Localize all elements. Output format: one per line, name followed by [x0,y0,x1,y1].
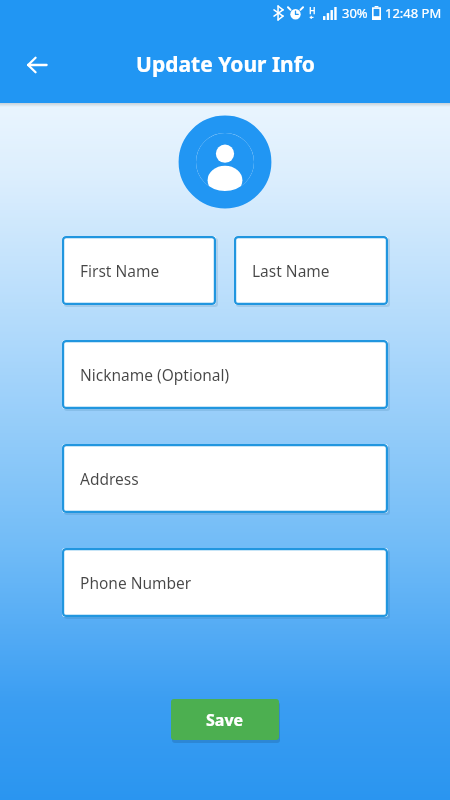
staticText: 30% [342,4,368,22]
button[interactable]: Nickname (Optional) [62,340,388,409]
staticText: Last Name [252,260,330,281]
staticText: Address [80,468,139,489]
staticText: 12:48 PM [385,4,442,22]
staticText: Save [206,709,244,731]
button[interactable]: Address [62,444,388,513]
button[interactable]: Back [13,41,61,89]
button[interactable]: Phone Number [62,548,388,617]
staticText: Nickname (Optional) [80,364,230,385]
button[interactable]: Save [171,699,279,740]
button[interactable]: Last Name [234,236,388,305]
button[interactable]: First Name [62,236,216,305]
staticText: First Name [80,260,160,281]
staticText: Update Your Info [136,50,315,79]
staticText: Phone Number [80,572,192,593]
